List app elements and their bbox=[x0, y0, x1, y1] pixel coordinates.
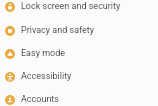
staticText: Lock screen and security bbox=[21, 1, 121, 12]
staticText: Accounts bbox=[21, 94, 59, 105]
staticText: Accessibility bbox=[21, 71, 72, 82]
staticText: Privacy and safety bbox=[21, 25, 95, 36]
staticText: Easy mode bbox=[21, 48, 66, 59]
button[interactable]: Easy mode bbox=[0, 42, 158, 65]
button[interactable]: Accounts bbox=[0, 88, 158, 106]
button[interactable]: Accessibility bbox=[0, 65, 158, 88]
button[interactable]: Privacy and safety bbox=[0, 19, 158, 42]
button[interactable]: Lock screen and security bbox=[0, 0, 158, 18]
